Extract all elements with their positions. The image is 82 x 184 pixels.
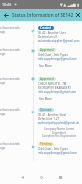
- button[interactable]: Approved: [38, 48, 80, 68]
- staticText: Approved: [40, 48, 54, 52]
- staticText: a few seconds ago: [0, 108, 22, 116]
- button[interactable]: Close: [74, 9, 82, 21]
- staticText: CHECK MIN STD - TM: [38, 82, 67, 86]
- staticText: 10:45: [2, 2, 12, 7]
- staticText: ▼ ▲ ▂▄▆ ▮: [60, 2, 80, 7]
- staticText: Queued: [40, 108, 52, 112]
- staticText: Approved: [40, 77, 54, 81]
- button[interactable]: Approved: [38, 77, 80, 101]
- staticText: Complete the Registration: [38, 134, 80, 138]
- staticText: info.supplierapp@gmail.com: [38, 151, 78, 155]
- staticText: See More: [39, 97, 52, 101]
- staticText: Deleted an s/f: [38, 35, 57, 39]
- button[interactable]: Queued: [38, 108, 80, 138]
- staticText: Odd Quat - Info Types: [38, 53, 68, 57]
- button[interactable]: Pending: [38, 142, 80, 155]
- button[interactable]: See More: [38, 97, 53, 101]
- staticText: ESCROW BY BKARADER1: [38, 86, 72, 90]
- staticText: Company Name Lorem Ingredient: [38, 127, 80, 134]
- staticText: automaticsupplier@gmail.com: [38, 39, 80, 43]
- button[interactable]: See More: [38, 64, 53, 68]
- staticText: See More: [39, 64, 52, 68]
- staticText: Odd Quat - Info Types: [38, 147, 68, 151]
- button[interactable]: Home: [33, 170, 49, 184]
- button[interactable]: Back: [0, 9, 12, 21]
- staticText: a few seconds ago: [0, 26, 22, 34]
- button[interactable]: Created: [38, 26, 80, 43]
- staticText: info.supplierxyz@gmail.com: [38, 90, 77, 94]
- staticText: info.supplierapp@gmail.com: [38, 57, 78, 61]
- button[interactable]: Back: [14, 170, 30, 184]
- staticText: Created: [40, 26, 52, 30]
- staticText: SE-42 : Another User: [38, 31, 66, 35]
- staticText: Status Information of SE142: [12, 12, 74, 18]
- staticText: Pending: [40, 142, 52, 146]
- staticText: authorityofsupplied@gmail.uk: [38, 121, 80, 125]
- staticText: SE-41 : Another Steel: [38, 113, 67, 117]
- button[interactable]: Recents: [52, 170, 68, 184]
- staticText: a few seconds ago: [0, 142, 22, 150]
- staticText: a few seconds ago: [0, 48, 22, 56]
- staticText: a few seconds ago: [0, 77, 22, 85]
- staticText: Defect line 1-27: [38, 117, 60, 121]
